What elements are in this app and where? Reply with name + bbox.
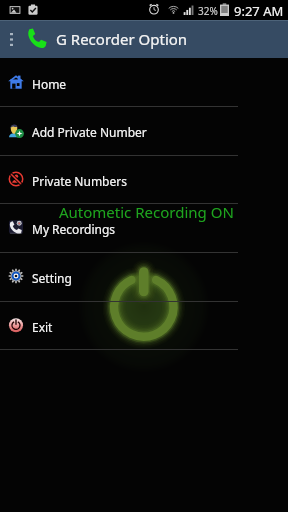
button[interactable]: Add Private Number	[0, 106, 288, 155]
button[interactable]: Private Numbers	[0, 155, 288, 204]
staticText: Setting	[32, 270, 72, 286]
button[interactable]: Setting	[0, 252, 288, 301]
button[interactable]: My Recordings	[0, 203, 288, 252]
staticText: G Recorder Option	[56, 29, 188, 49]
staticText: 32%	[198, 4, 218, 18]
staticText: My Recordings	[32, 221, 116, 237]
staticText: Add Private Number	[32, 124, 147, 140]
staticText: Autometic Recording ON	[59, 202, 234, 222]
button[interactable]: Exit	[0, 301, 288, 350]
staticText: Exit	[32, 319, 53, 335]
staticText: Home	[32, 76, 67, 92]
button[interactable]: Home	[0, 58, 288, 107]
button[interactable]: More options	[0, 20, 22, 58]
staticText: Private Numbers	[32, 173, 127, 189]
staticText: 9:27 AM	[234, 2, 284, 20]
